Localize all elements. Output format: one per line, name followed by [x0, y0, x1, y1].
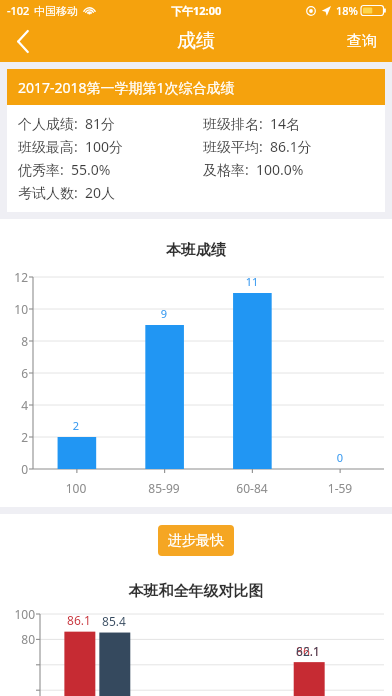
staticText: 中国移动 [34, 4, 78, 18]
staticText: 14名 [270, 114, 301, 133]
staticText: 0 [0, 461, 28, 477]
staticText: 班级排名: [203, 114, 263, 133]
staticText: 86.1分 [270, 137, 312, 156]
staticText: 85.4 [79, 613, 149, 629]
staticText: 下午12:00 [171, 3, 222, 18]
staticText: 2 [0, 429, 28, 445]
staticText: 2017-2018第一学期第1次综合成绩 [18, 78, 235, 97]
staticText: 80 [0, 631, 35, 647]
staticText: 优秀率: [18, 160, 64, 179]
staticText: 进步最快 [168, 532, 224, 550]
staticText: 55.0% [71, 160, 111, 179]
staticText: 11 [227, 274, 277, 289]
staticText: 查询 [347, 32, 377, 51]
staticText: 及格率: [203, 160, 249, 179]
staticText: 86.1 [44, 612, 114, 628]
staticText: 本班和全年级对比图 [0, 582, 392, 601]
staticText: 考试人数: [18, 183, 78, 202]
button[interactable]: 进步最快 [158, 525, 234, 556]
button[interactable]: Back [0, 20, 46, 62]
staticText: 20人 [85, 183, 116, 202]
staticText: 10 [0, 301, 28, 317]
staticText: 62.1 [273, 643, 343, 659]
staticText: 100 [0, 606, 35, 622]
staticText: 18% [336, 3, 358, 18]
staticText: 班级最高: [18, 137, 78, 156]
staticText: 12 [0, 269, 28, 285]
staticText: 85-99 [129, 480, 199, 496]
staticText: 100 [41, 480, 111, 496]
staticText: 0 [315, 450, 365, 465]
staticText: 2 [51, 418, 101, 433]
staticText: -102 [7, 3, 30, 18]
staticText: 60-84 [217, 480, 287, 496]
staticText: 1-59 [305, 480, 375, 496]
staticText: 个人成绩: [18, 114, 78, 133]
staticText: 6 [0, 365, 28, 381]
button[interactable]: 查询 [332, 20, 392, 62]
staticText: 81分 [85, 114, 116, 133]
staticText: 本班成绩 [0, 241, 392, 260]
staticText: 8 [0, 333, 28, 349]
staticText: 100分 [85, 137, 124, 156]
staticText: 4 [0, 397, 28, 413]
staticText: 100.0% [256, 160, 304, 179]
staticText: 班级平均: [203, 137, 263, 156]
staticText: 成绩 [177, 29, 215, 53]
staticText: 86.1 [273, 643, 343, 659]
staticText: 9 [139, 306, 189, 321]
